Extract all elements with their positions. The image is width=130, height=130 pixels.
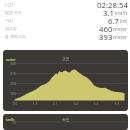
staticText: 6.7 (112, 102, 122, 106)
button[interactable]: 거리 (0, 16, 130, 24)
staticText: 속도 (62, 117, 70, 122)
staticText: km (120, 18, 128, 25)
button[interactable]: 총 획득고도 (0, 32, 130, 40)
staticText: 거리 (5, 18, 13, 23)
staticText: 평균 속도 (5, 10, 23, 15)
button[interactable]: km/h (3, 114, 128, 130)
button[interactable]: 평균 속도 (0, 8, 130, 16)
staticText: 250 (6, 81, 16, 86)
staticText: 총 획득고도 (5, 34, 27, 39)
staticText: meter (113, 26, 128, 33)
staticText: 최고점 (5, 26, 17, 31)
staticText: 3.1 (103, 8, 115, 16)
staticText: km/h (6, 117, 15, 122)
staticText: 0.0 (10, 102, 20, 106)
staticText: 1.3 (30, 102, 40, 106)
staticText: 375 (6, 71, 16, 76)
staticText: 4.0 (71, 102, 81, 106)
staticText: meter (113, 34, 128, 41)
staticText: 2.7 (50, 102, 60, 106)
button[interactable]: 최고점 (0, 24, 130, 32)
staticText: 02:28:54 (97, 0, 128, 8)
staticText: 5.4 (91, 102, 101, 106)
staticText: 시간 (5, 2, 13, 7)
staticText: 393 (99, 32, 113, 40)
button[interactable]: 시간 (0, 0, 130, 8)
staticText: 500 (6, 61, 16, 66)
button[interactable]: 500 (3, 50, 128, 111)
staticText: km/h (115, 10, 128, 17)
staticText: 12 (6, 120, 16, 125)
staticText: 460 (99, 24, 113, 32)
staticText: meter (6, 57, 16, 62)
staticText: 고도 (62, 56, 70, 61)
staticText: 125 (6, 91, 16, 96)
staticText: 6.7 (108, 16, 120, 24)
